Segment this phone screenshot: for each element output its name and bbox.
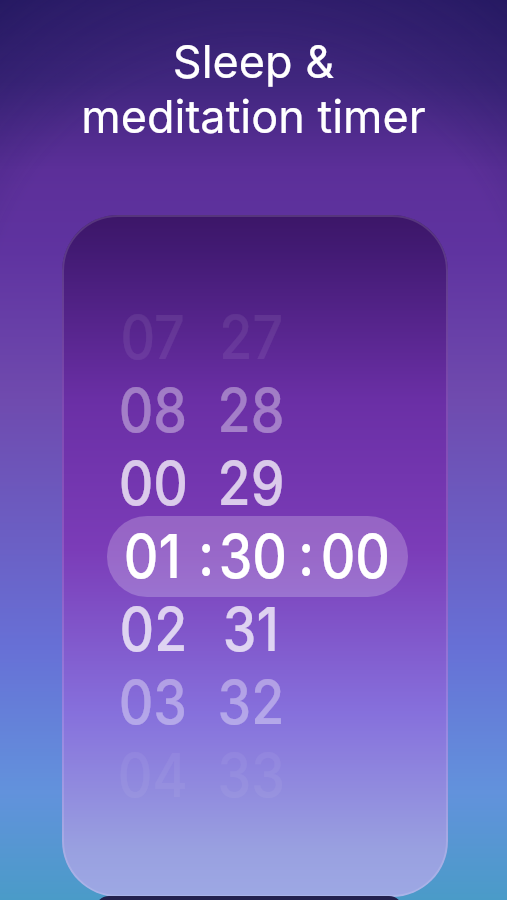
- button[interactable]: 02: [74, 581, 232, 677]
- button[interactable]: 30: [174, 508, 332, 604]
- button[interactable]: 08: [74, 362, 232, 458]
- button[interactable]: :: [227, 506, 385, 602]
- staticText: 29: [218, 446, 285, 520]
- staticText: 00: [321, 519, 390, 593]
- button[interactable]: [95, 896, 403, 900]
- staticText: 33: [218, 738, 285, 812]
- staticText: 28: [218, 373, 284, 447]
- staticText: 08: [119, 373, 187, 447]
- staticText: 27: [219, 300, 283, 374]
- button[interactable]: 07: [74, 289, 232, 385]
- button[interactable]: 29: [172, 435, 330, 531]
- staticText: 03: [119, 665, 187, 739]
- button[interactable]: 32: [172, 654, 330, 750]
- button[interactable]: 31: [172, 581, 330, 677]
- staticText: 07: [120, 300, 185, 374]
- staticText: 04: [118, 738, 188, 812]
- staticText: 30: [219, 519, 287, 593]
- button[interactable]: 04: [74, 727, 232, 823]
- staticText: 32: [218, 665, 284, 739]
- staticText: :: [298, 517, 315, 591]
- button[interactable]: 00: [276, 508, 434, 604]
- button[interactable]: 03: [74, 654, 232, 750]
- button[interactable]: 33: [172, 727, 330, 823]
- staticText: 01: [124, 519, 181, 593]
- button[interactable]: 27: [172, 289, 330, 385]
- staticText: Sleep & meditation timer: [0, 34, 507, 144]
- button[interactable]: [107, 516, 408, 597]
- button[interactable]: 00: [74, 435, 232, 531]
- button[interactable]: 28: [172, 362, 330, 458]
- staticText: 00: [119, 446, 188, 520]
- staticText: :: [198, 517, 215, 591]
- button[interactable]: :: [127, 506, 285, 602]
- staticText: 02: [120, 592, 187, 666]
- button[interactable]: 01: [73, 508, 231, 604]
- staticText: 31: [223, 592, 279, 666]
